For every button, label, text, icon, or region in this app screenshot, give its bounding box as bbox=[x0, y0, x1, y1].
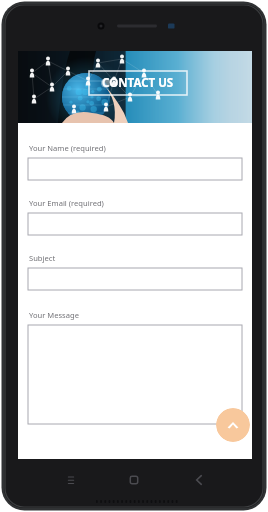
button[interactable]: Back bbox=[187, 468, 211, 492]
button[interactable]: Home bbox=[122, 468, 146, 492]
button[interactable] bbox=[28, 310, 242, 424]
button[interactable]: Scroll to top bbox=[216, 408, 250, 442]
button[interactable] bbox=[28, 253, 242, 290]
button[interactable] bbox=[28, 143, 242, 180]
button[interactable] bbox=[28, 198, 242, 235]
button[interactable]: Menu bbox=[59, 468, 83, 492]
